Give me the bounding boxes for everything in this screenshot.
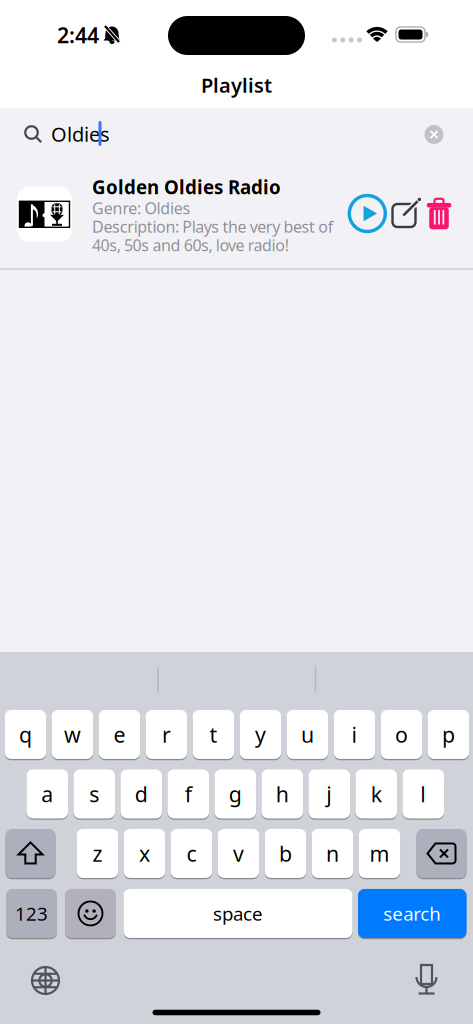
staticText: o [395,720,408,749]
button[interactable]: Delete [416,829,466,879]
button[interactable]: i [334,710,375,760]
staticText: search [383,901,441,926]
button[interactable]: space [123,889,352,939]
staticText: f [185,780,192,808]
button[interactable]: x [124,829,165,879]
staticText: q [19,720,32,749]
staticText: c [186,839,196,868]
button[interactable]: v [218,829,259,879]
button[interactable]: Edit [389,198,419,228]
staticText: n [326,839,339,868]
button[interactable]: y [240,710,281,760]
button[interactable]: Dictation [411,964,441,995]
button[interactable]: g [214,769,256,820]
button[interactable]: e [99,710,140,760]
button[interactable]: search [358,889,466,939]
button[interactable]: p [428,710,469,760]
staticText: h [276,780,289,808]
button[interactable]: Delete [427,198,451,229]
button[interactable]: a [26,769,68,820]
staticText: Golden Oldies Radio [92,175,281,199]
staticText: t [209,720,217,749]
staticText: l [420,780,426,808]
staticText: y [255,720,266,749]
staticText: x [139,839,150,868]
staticText: Genre: Oldies [92,197,191,219]
staticText: k [371,780,382,808]
staticText: 123 [15,901,48,926]
staticText: z [92,839,102,868]
button[interactable]: b [265,829,306,879]
staticText: p [442,720,455,749]
staticText: Description: Plays the very best of [92,216,334,237]
staticText: m [369,839,389,868]
staticText: u [301,720,314,749]
button[interactable]: Play [349,195,385,231]
button[interactable]: c [171,829,212,879]
button[interactable]: o [381,710,422,760]
staticText: g [229,780,242,808]
button[interactable]: k [355,769,397,820]
button[interactable]: j [308,769,350,820]
button[interactable]: Shift [5,829,55,879]
staticText: Oldies [51,121,110,147]
button[interactable]: 123 [6,889,57,939]
button[interactable]: l [402,769,444,820]
staticText: a [41,780,53,808]
button[interactable]: t [193,710,234,760]
button[interactable]: s [73,769,115,820]
staticText: b [279,839,292,868]
staticText: 40s, 50s and 60s, love radio! [92,234,289,256]
button[interactable]: Golden Oldies Radio [0,160,473,269]
button[interactable]: z [77,829,118,879]
button[interactable]: u [287,710,328,760]
button[interactable]: f [167,769,209,820]
button[interactable]: h [261,769,303,820]
button[interactable]: Next keyboard [30,965,60,995]
button[interactable]: Emoji [65,889,116,939]
staticText: 2:44 [57,21,99,49]
button[interactable]: Clear text [424,125,443,144]
staticText: w [64,720,81,749]
staticText: space [213,901,263,926]
button[interactable]: n [312,829,353,879]
staticText: r [162,720,171,749]
staticText: e [113,720,125,749]
button[interactable]: w [52,710,93,760]
button[interactable]: m [359,829,400,879]
staticText: Playlist [201,72,272,98]
staticText: v [233,839,244,868]
staticText: s [89,780,99,808]
staticText: j [326,780,332,808]
button[interactable]: r [146,710,187,760]
button[interactable]: d [120,769,162,820]
button[interactable]: q [5,710,46,760]
staticText: i [351,720,357,749]
button[interactable]: Search [0,108,473,160]
staticText: d [135,780,148,808]
